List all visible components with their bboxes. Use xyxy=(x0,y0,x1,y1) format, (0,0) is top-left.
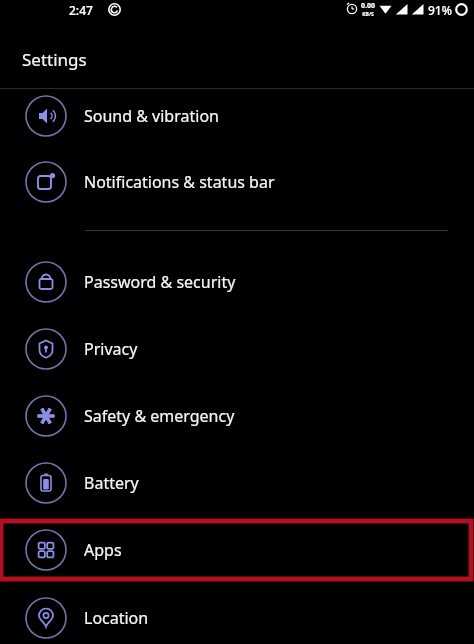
staticText: KB/S xyxy=(362,11,374,18)
staticText: 2:47 xyxy=(69,2,93,18)
button[interactable]: Safety & emergency xyxy=(0,383,474,449)
button[interactable]: Apps xyxy=(0,517,474,583)
staticText: Privacy xyxy=(84,338,138,360)
staticText: Sound & vibration xyxy=(84,105,219,127)
staticText: Settings xyxy=(22,48,87,71)
staticText: Location xyxy=(84,607,149,629)
staticText: Password & security xyxy=(84,271,236,293)
staticText: Safety & emergency xyxy=(84,405,235,427)
staticText: 0.00 xyxy=(361,1,375,11)
button[interactable]: Password & security xyxy=(0,249,474,315)
staticText: 91% xyxy=(428,2,452,18)
button[interactable]: Notifications & status bar xyxy=(0,149,474,215)
button[interactable]: Privacy xyxy=(0,316,474,382)
staticText: Notifications & status bar xyxy=(84,171,275,193)
button[interactable]: Sound & vibration xyxy=(0,83,474,149)
button[interactable]: Location xyxy=(0,585,474,644)
button[interactable]: Battery xyxy=(0,450,474,516)
staticText: Apps xyxy=(84,539,122,561)
staticText: Battery xyxy=(84,472,139,494)
